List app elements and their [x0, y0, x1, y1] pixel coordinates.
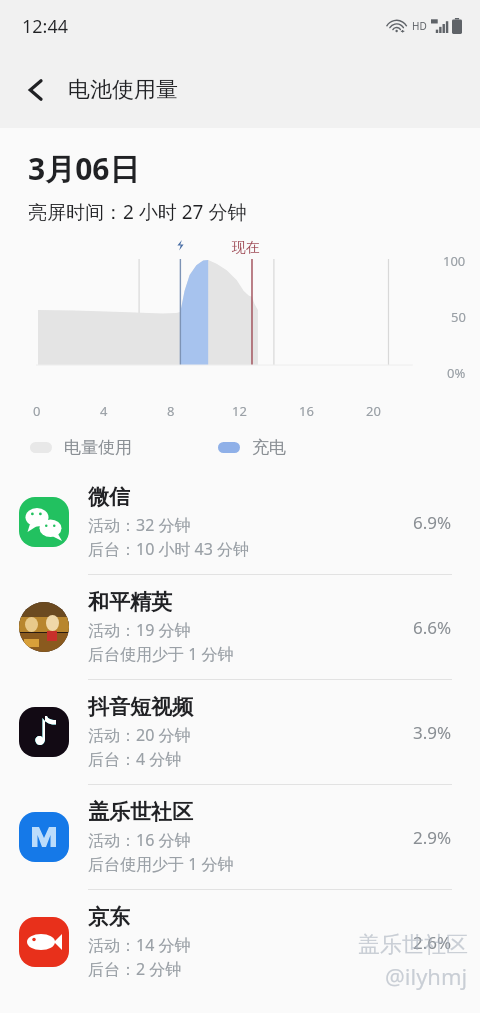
staticText: 后台使用少于 1 分钟 [88, 853, 234, 875]
staticText: 后台：10 小时 43 分钟 [88, 538, 250, 560]
staticText: 现在 [232, 239, 260, 257]
staticText: 后台：4 分钟 [88, 748, 182, 770]
staticText: 20 [366, 402, 381, 420]
staticText: 电量使用 [64, 437, 132, 458]
staticText: 亮屏时间：2 小时 27 分钟 [28, 199, 247, 225]
staticText: 电池使用量 [68, 76, 178, 104]
staticText: 盖乐世社区 [358, 931, 468, 959]
button[interactable]: 抖音短视频 [0, 680, 480, 784]
staticText: 2.9% [413, 826, 452, 849]
button[interactable]: 京东 [0, 890, 480, 994]
staticText: 盖乐世社区 [88, 799, 193, 825]
staticText: 微信 [88, 484, 130, 510]
staticText: 2.6% [413, 931, 452, 954]
staticText: 0% [447, 364, 466, 382]
staticText: 后台使用少于 1 分钟 [88, 643, 234, 665]
staticText: 3月06日 [28, 148, 140, 189]
staticText: 活动：16 分钟 [88, 829, 191, 851]
staticText: 活动：32 分钟 [88, 514, 191, 536]
staticText: 12:44 [22, 14, 69, 39]
staticText: 50 [451, 308, 466, 326]
button[interactable]: 和平精英 [0, 575, 480, 679]
staticText: 4 [100, 402, 108, 420]
button[interactable]: 盖乐世社区 [0, 785, 480, 889]
staticText: 活动：14 分钟 [88, 934, 191, 956]
staticText: 3.9% [413, 721, 452, 744]
staticText: @ilyhmj [385, 961, 468, 991]
staticText: 6.9% [413, 511, 452, 534]
staticText: 8 [167, 402, 175, 420]
staticText: 12 [232, 402, 247, 420]
staticText: 和平精英 [88, 589, 172, 615]
staticText: 充电 [252, 437, 286, 458]
staticText: HD [412, 19, 427, 33]
staticText: 活动：19 分钟 [88, 619, 191, 641]
staticText: 16 [299, 402, 314, 420]
button[interactable]: 返回 [14, 68, 58, 112]
staticText: 后台：2 分钟 [88, 958, 182, 980]
button[interactable]: 微信 [0, 470, 480, 574]
staticText: 0 [33, 402, 41, 420]
staticText: 抖音短视频 [88, 694, 193, 720]
staticText: 100 [443, 252, 466, 270]
staticText: 京东 [88, 904, 130, 930]
staticText: 活动：20 分钟 [88, 724, 191, 746]
staticText: 6.6% [413, 616, 452, 639]
